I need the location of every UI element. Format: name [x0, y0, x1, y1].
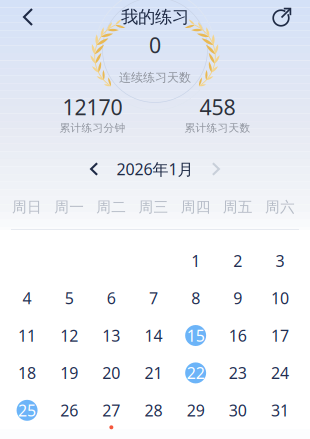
staticText: 周二 — [96, 198, 126, 216]
staticText: 累计练习分钟 — [59, 121, 125, 134]
button[interactable]: 17 — [259, 322, 301, 348]
button[interactable]: Share — [263, 0, 301, 34]
button[interactable]: 27 — [90, 397, 132, 423]
staticText: 27 — [102, 400, 120, 421]
button[interactable]: 5 — [48, 285, 90, 311]
staticText: 20 — [102, 362, 120, 383]
staticText: 4 — [23, 287, 32, 309]
staticText: 19 — [60, 362, 78, 383]
staticText: 3 — [275, 250, 284, 271]
staticText: 7 — [149, 287, 158, 309]
staticText: 周四 — [181, 198, 211, 216]
staticText: 周日 — [12, 198, 42, 216]
button[interactable]: 9 — [217, 285, 259, 311]
staticText: 24 — [271, 362, 289, 383]
staticText: 周一 — [54, 198, 84, 216]
button[interactable]: 22 — [175, 360, 217, 386]
button[interactable]: 30 — [217, 397, 259, 423]
staticText: 21 — [144, 362, 162, 383]
button[interactable]: Next month — [202, 157, 229, 181]
staticText: 6 — [107, 287, 116, 309]
staticText: 10 — [271, 287, 289, 309]
button[interactable]: 7 — [132, 285, 174, 311]
staticText: 18 — [18, 362, 36, 383]
button[interactable]: 4 — [6, 285, 48, 311]
button[interactable]: 12 — [48, 322, 90, 348]
staticText: 28 — [144, 400, 162, 421]
staticText: 30 — [229, 400, 247, 421]
button[interactable]: 14 — [132, 322, 174, 348]
button[interactable]: 31 — [259, 397, 301, 423]
button[interactable]: 19 — [48, 360, 90, 386]
button[interactable]: 15 — [175, 322, 217, 348]
staticText: 22 — [187, 362, 205, 383]
button[interactable]: 26 — [48, 397, 90, 423]
staticText: 8 — [191, 287, 200, 309]
button[interactable]: 28 — [132, 397, 174, 423]
button[interactable]: 11 — [6, 322, 48, 348]
staticText: 16 — [229, 325, 247, 346]
button[interactable]: 16 — [217, 322, 259, 348]
button[interactable]: 20 — [90, 360, 132, 386]
staticText: 31 — [271, 400, 289, 421]
staticText: 周六 — [265, 198, 295, 216]
staticText: 29 — [187, 400, 205, 421]
button[interactable]: 18 — [6, 360, 48, 386]
staticText: 2026年1月 — [116, 158, 193, 180]
staticText: 0 — [149, 31, 161, 59]
staticText: 连续练习天数 — [119, 70, 191, 85]
button[interactable]: 24 — [259, 360, 301, 386]
staticText: 17 — [271, 325, 289, 346]
staticText: 23 — [229, 362, 247, 383]
button[interactable]: 13 — [90, 322, 132, 348]
staticText: 周五 — [223, 198, 253, 216]
button[interactable]: Previous month — [80, 157, 107, 181]
button[interactable]: 6 — [90, 285, 132, 311]
staticText: 14 — [144, 325, 162, 346]
staticText: 15 — [187, 325, 205, 346]
staticText: 12170 — [62, 93, 122, 121]
staticText: 11 — [18, 325, 36, 346]
button[interactable]: 10 — [259, 285, 301, 311]
button[interactable]: 3 — [259, 248, 301, 274]
staticText: 我的练习 — [121, 6, 189, 28]
button[interactable]: Back — [9, 0, 47, 34]
staticText: 25 — [18, 400, 36, 421]
staticText: 周三 — [138, 198, 168, 216]
staticText: 458 — [199, 93, 235, 121]
staticText: 13 — [102, 325, 120, 346]
staticText: 累计练习天数 — [184, 121, 250, 134]
button[interactable]: 23 — [217, 360, 259, 386]
staticText: 2 — [233, 250, 242, 271]
button[interactable]: 25 — [6, 397, 48, 423]
button[interactable]: 1 — [175, 248, 217, 274]
staticText: 26 — [60, 400, 78, 421]
staticText: 12 — [60, 325, 78, 346]
staticText: 9 — [233, 287, 242, 309]
staticText: 5 — [65, 287, 74, 309]
button[interactable]: 29 — [175, 397, 217, 423]
staticText: 1 — [191, 250, 200, 271]
button[interactable]: 8 — [175, 285, 217, 311]
button[interactable]: 2 — [217, 248, 259, 274]
button[interactable]: 21 — [132, 360, 174, 386]
